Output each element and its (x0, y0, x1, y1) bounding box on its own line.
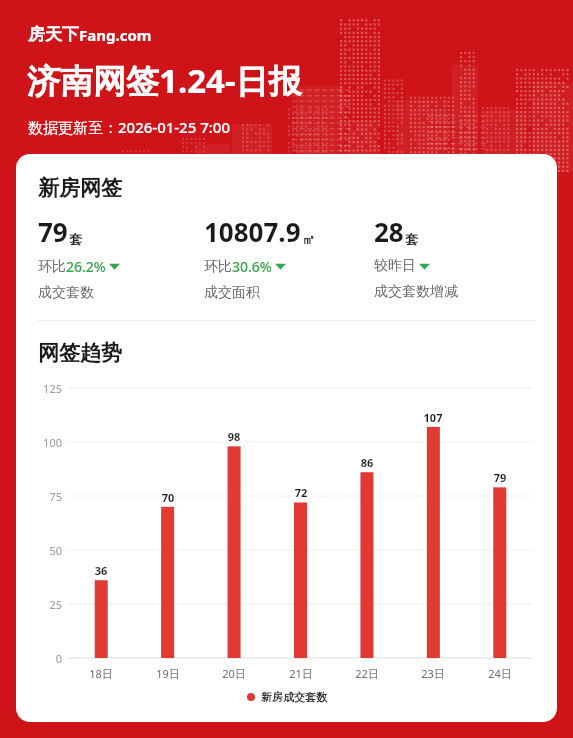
staticText: 75 (24, 489, 62, 504)
staticText: 86 (343, 455, 391, 470)
staticText: 新房成交套数 (261, 690, 327, 704)
staticText: Fang.com (79, 25, 152, 45)
staticText: 24日 (476, 666, 524, 681)
staticText: 30.6% (232, 257, 272, 276)
staticText: 19日 (144, 666, 192, 681)
staticText: 50 (24, 543, 62, 558)
staticText: 25 (24, 597, 62, 612)
staticText: 环比 (38, 258, 66, 276)
staticText: 21日 (277, 666, 325, 681)
staticText: 79 (476, 470, 524, 485)
staticText: 成交套数 (38, 284, 94, 302)
staticText: 新房网签 (38, 175, 122, 201)
staticText: 成交套数增减 (374, 283, 458, 301)
staticText: 100 (24, 435, 62, 450)
staticText: 成交面积 (204, 284, 260, 302)
staticText: 18日 (77, 666, 125, 681)
staticText: 0 (24, 651, 62, 666)
button[interactable]: 新房网签 (16, 154, 557, 722)
staticText: 套 (69, 231, 82, 247)
staticText: 22日 (343, 666, 391, 681)
staticText: 107 (409, 410, 457, 425)
button[interactable]: 房天下 Fang.com (28, 24, 152, 45)
staticText: ㎡ (302, 231, 315, 247)
staticText: 济南网签1.24-日报 (27, 58, 302, 103)
staticText: 79 (38, 214, 68, 249)
staticText: 网签趋势 (38, 340, 122, 366)
staticText: 数据更新至：2026-01-25 7:00 (28, 117, 230, 137)
staticText: 125 (24, 381, 62, 396)
staticText: 环比 (204, 258, 232, 276)
staticText: 20日 (210, 666, 258, 681)
staticText: 28 (374, 214, 404, 249)
staticText: 72 (277, 485, 325, 500)
staticText: 10807.9 (204, 214, 301, 249)
staticText: 26.2% (66, 257, 106, 276)
staticText: 较昨日 (374, 257, 416, 275)
staticText: 房天下 (28, 24, 79, 45)
staticText: 70 (144, 490, 192, 505)
staticText: 98 (210, 429, 258, 444)
staticText: 36 (77, 563, 125, 578)
staticText: 23日 (409, 666, 457, 681)
staticText: 套 (405, 231, 418, 247)
